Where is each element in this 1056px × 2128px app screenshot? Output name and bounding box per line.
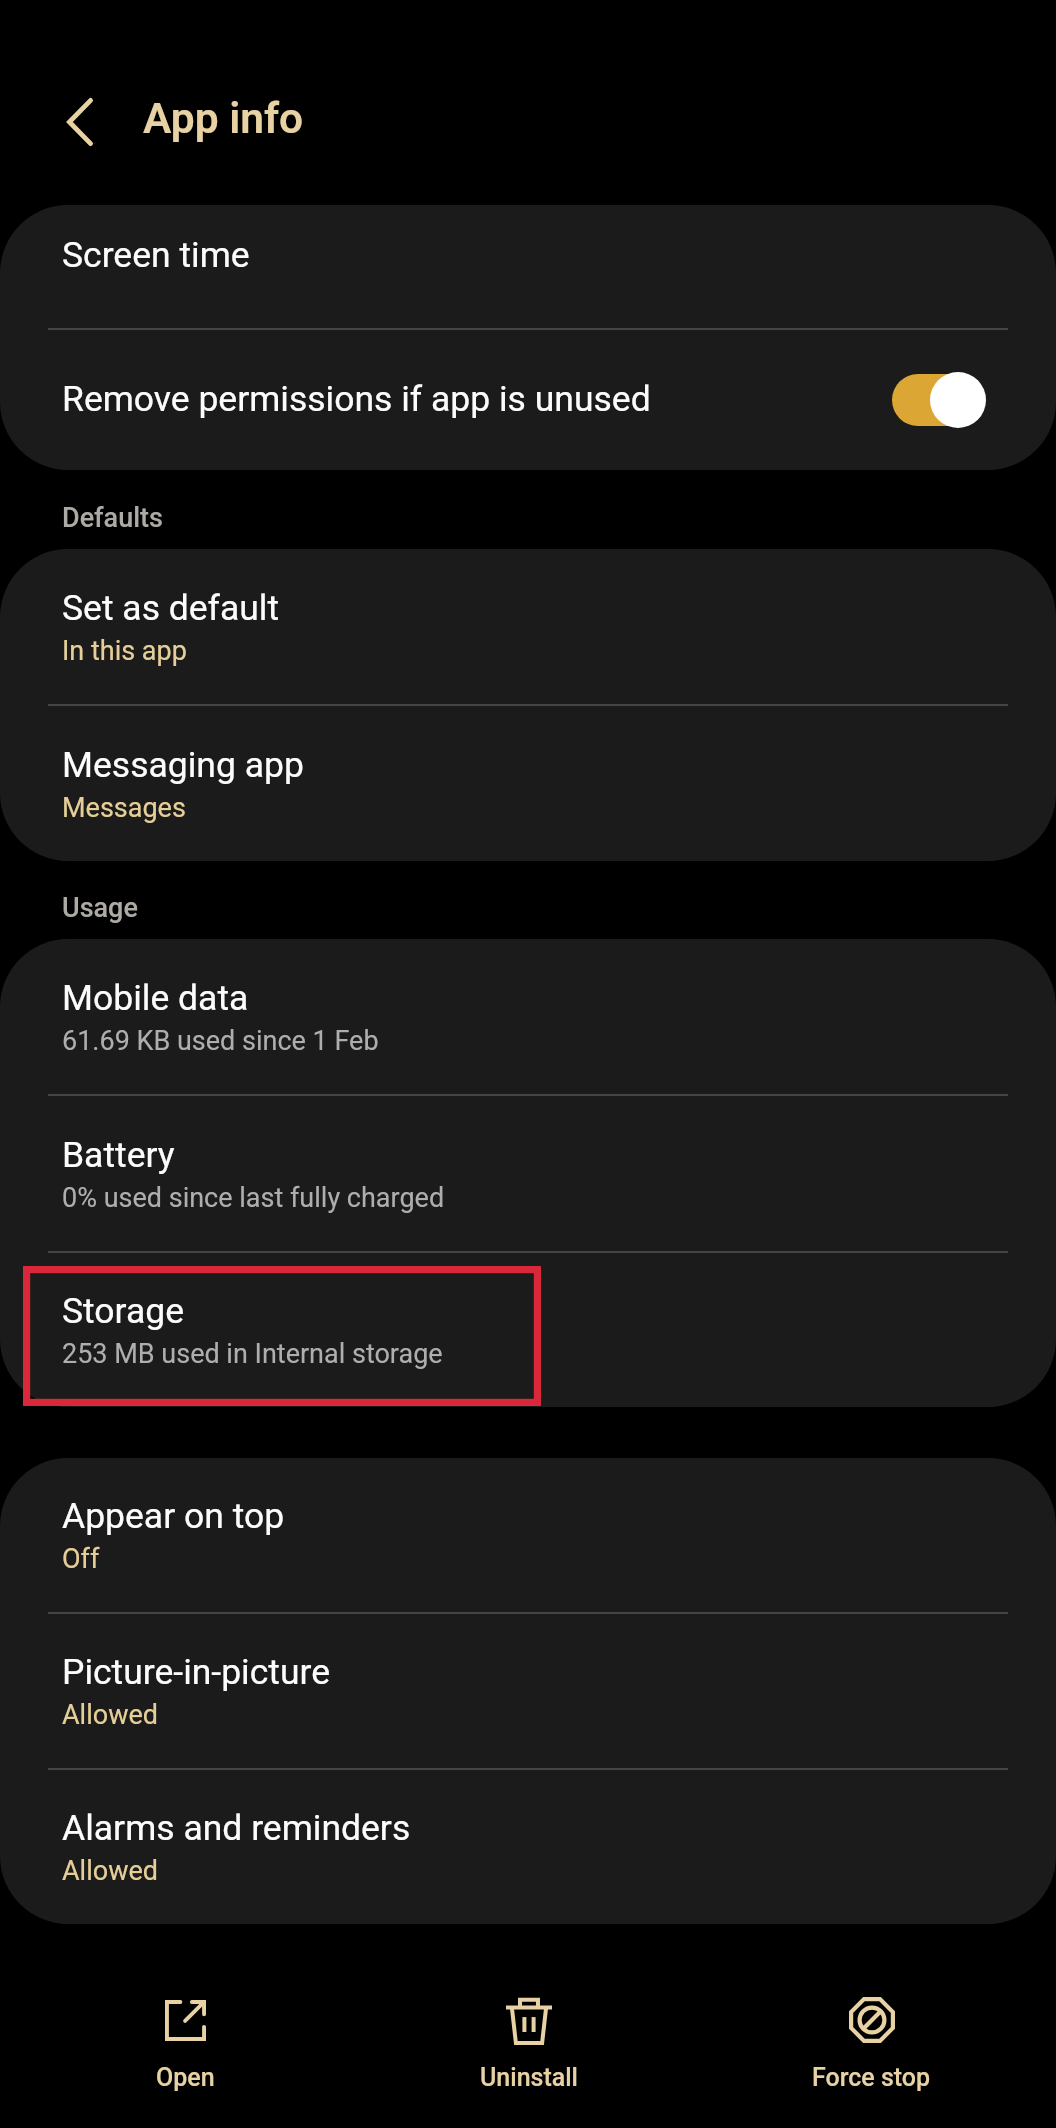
staticText: Appear on top — [62, 1495, 285, 1537]
button[interactable]: Navigate up — [44, 86, 116, 158]
button[interactable]: Alarms and reminders — [0, 1770, 1056, 1924]
staticText: Allowed — [62, 1855, 158, 1887]
button[interactable]: Force stop — [700, 1930, 1043, 2128]
staticText: Messages — [62, 792, 186, 824]
button[interactable]: Battery — [0, 1096, 1056, 1251]
staticText: Set as default — [62, 587, 280, 629]
button[interactable]: Mobile data — [0, 939, 1056, 1094]
button[interactable]: Set as default — [0, 549, 1056, 704]
button[interactable]: Remove permissions toggle — [892, 371, 986, 429]
staticText: Picture-in-picture — [62, 1651, 331, 1693]
button[interactable]: Open — [13, 1930, 357, 2128]
button[interactable]: Uninstall — [357, 1930, 700, 2128]
staticText: 0% used since last fully charged — [62, 1182, 445, 1214]
staticText: App info — [143, 94, 304, 144]
staticText: Battery — [62, 1134, 175, 1176]
button[interactable]: Messaging app — [0, 706, 1056, 861]
button[interactable]: Screen time — [0, 205, 1056, 328]
staticText: 61.69 KB used since 1 Feb — [62, 1025, 379, 1057]
staticText: Force stop — [812, 2063, 931, 2092]
staticText: Usage — [62, 892, 138, 924]
staticText: Open — [156, 2063, 215, 2092]
staticText: Allowed — [62, 1699, 158, 1731]
button[interactable]: Remove permissions if app is unused — [0, 330, 1056, 470]
staticText: Uninstall — [480, 2063, 578, 2092]
staticText: Messaging app — [62, 744, 304, 786]
staticText: Off — [62, 1543, 100, 1575]
staticText: In this app — [62, 635, 187, 667]
staticText: Alarms and reminders — [62, 1807, 411, 1849]
staticText: Storage — [62, 1290, 184, 1332]
staticText: Mobile data — [62, 977, 249, 1019]
staticText: Defaults — [62, 502, 163, 534]
staticText: 253 MB used in Internal storage — [62, 1338, 443, 1370]
button[interactable]: Picture-in-picture — [0, 1614, 1056, 1768]
staticText: Remove permissions if app is unused — [62, 378, 651, 420]
button[interactable]: Appear on top — [0, 1458, 1056, 1612]
button[interactable]: Storage — [0, 1253, 1056, 1407]
staticText: Screen time — [62, 234, 250, 276]
